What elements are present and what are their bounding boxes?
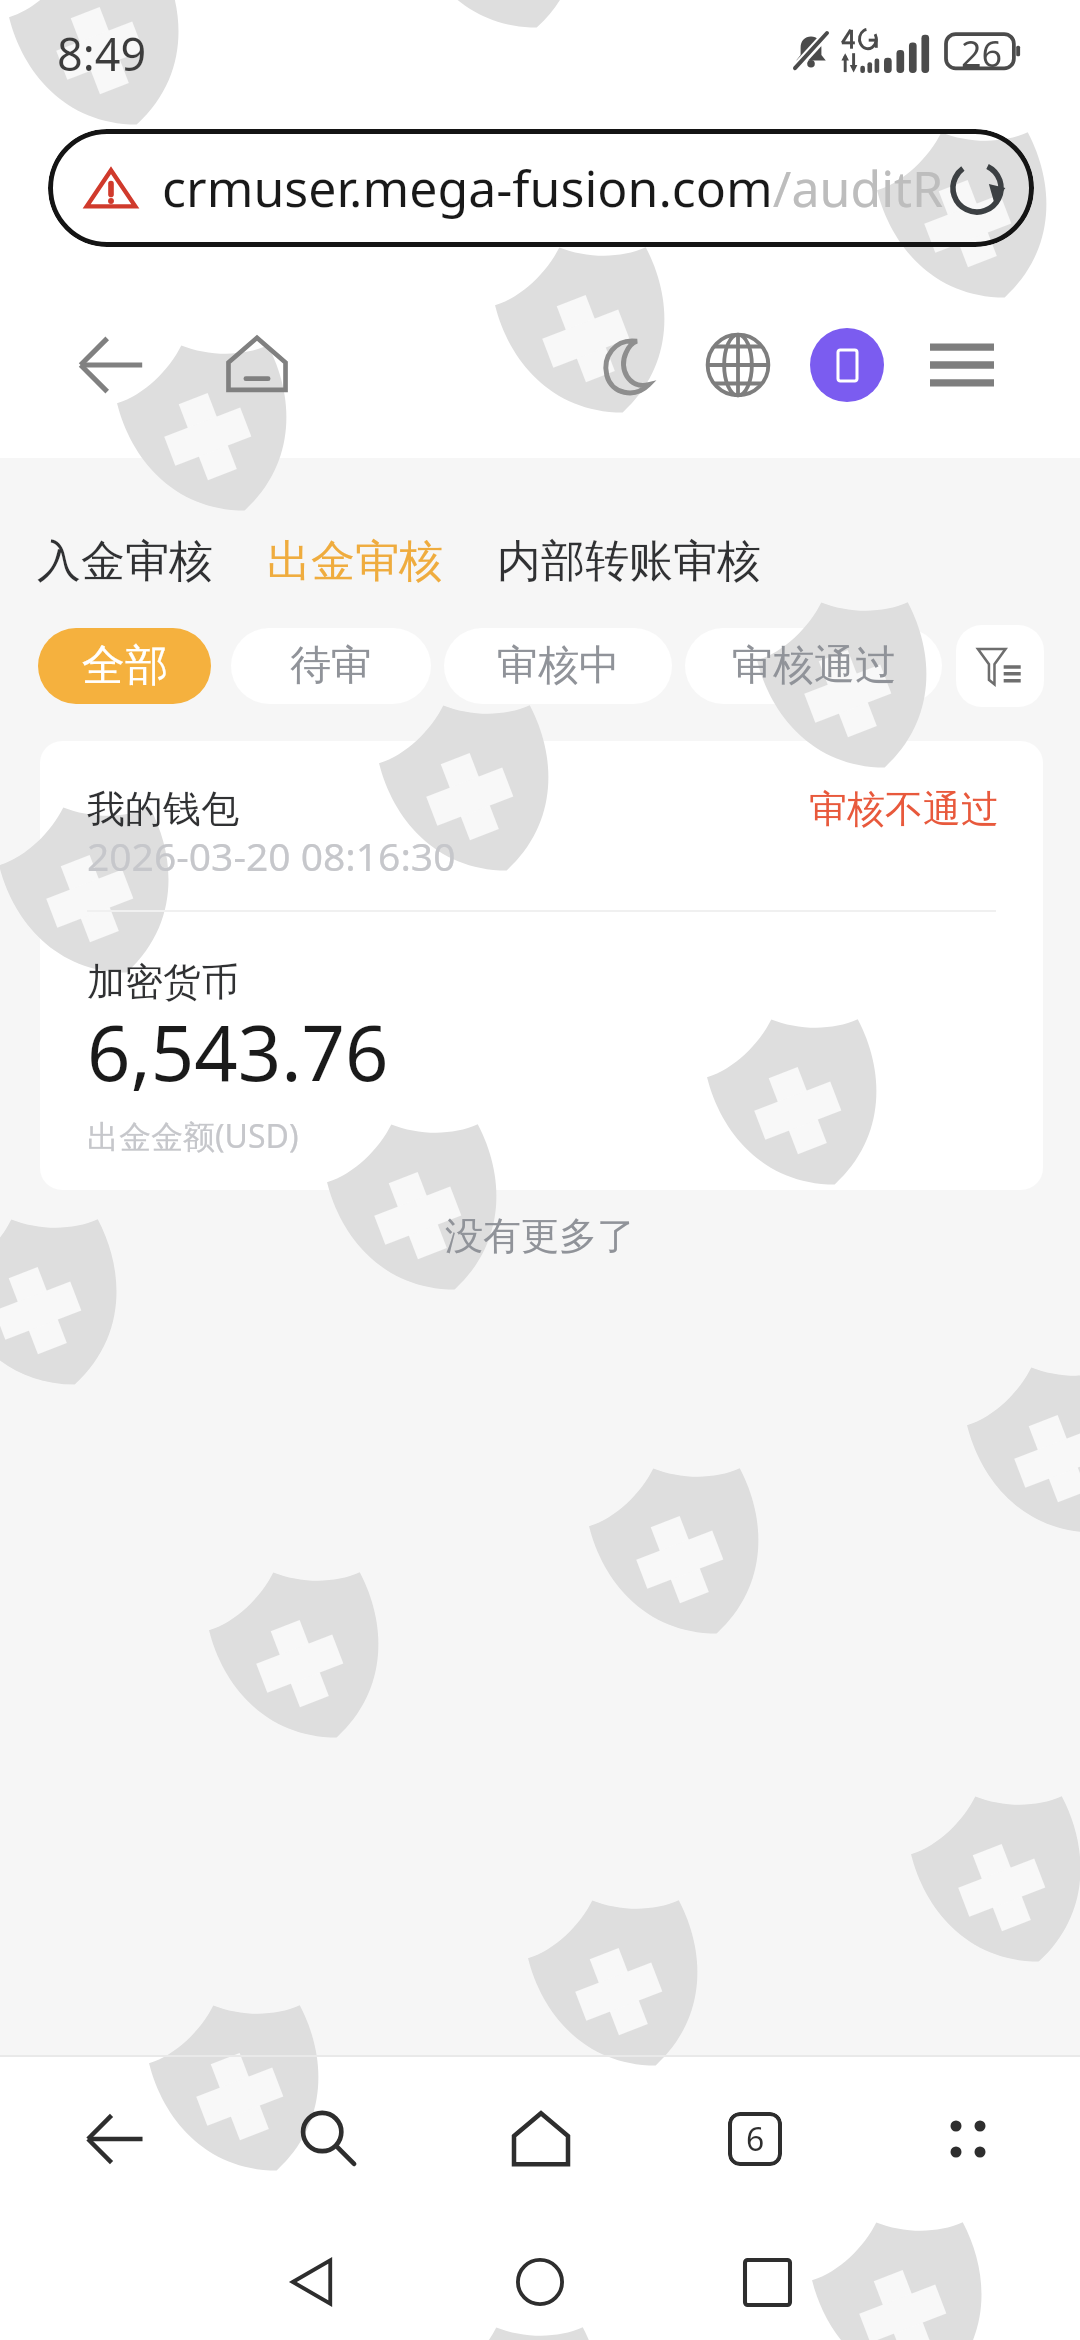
- button[interactable]: 出金审核: [240, 524, 470, 599]
- button[interactable]: 待审: [231, 628, 431, 704]
- staticText: 全部: [82, 639, 168, 693]
- staticText: 内部转账审核: [497, 534, 761, 589]
- staticText: 审核通过: [732, 640, 896, 692]
- staticText: 内部转账审核: [497, 534, 761, 589]
- button[interactable]: Back: [266, 2236, 358, 2328]
- staticText: 审核不通过: [809, 785, 999, 833]
- staticText: 6: [746, 2117, 765, 2161]
- staticText: 8:49: [57, 23, 147, 84]
- staticText: 审核中: [497, 640, 620, 692]
- button[interactable]: Filter: [956, 625, 1044, 707]
- button[interactable]: 入金审核: [10, 524, 240, 599]
- other: Reload: [944, 155, 1010, 221]
- staticText: 审核通过: [732, 640, 896, 692]
- button[interactable]: Search: [278, 2089, 378, 2189]
- button[interactable]: 审核通过: [685, 628, 942, 704]
- button[interactable]: Tabs: [705, 2089, 805, 2189]
- button[interactable]: 全部: [38, 628, 211, 704]
- staticText: crmuser.mega-fusion.com/auditRecords: [162, 154, 944, 222]
- button[interactable]: 审核中: [444, 628, 672, 704]
- button[interactable]: Home: [209, 317, 305, 413]
- button[interactable]: 内部转账审核: [470, 524, 788, 599]
- staticText: 加密货币: [87, 958, 239, 1006]
- button[interactable]: 我的钱包: [40, 741, 1043, 1190]
- button[interactable]: Recents: [721, 2236, 813, 2328]
- staticText: 全部: [82, 639, 168, 693]
- staticText: 2026-03-20 08:16:30: [87, 829, 456, 882]
- button[interactable]: 内部转账审核: [470, 524, 788, 599]
- staticText: 加密货币: [87, 958, 239, 1006]
- staticText: 6,543.76: [87, 1000, 389, 1104]
- button[interactable]: Translate: [690, 317, 786, 413]
- button[interactable]: Menu: [914, 317, 1010, 413]
- button[interactable]: Night mode: [582, 317, 678, 413]
- staticText: 出金金额(USD): [87, 1114, 299, 1158]
- staticText: 出金金额(USD): [87, 1114, 299, 1158]
- staticText: 6,543.76: [87, 1000, 389, 1104]
- button[interactable]: Home: [494, 2236, 586, 2328]
- staticText: 待审: [290, 640, 372, 692]
- button[interactable]: crmuser.mega-fusion.com/auditRecords: [48, 129, 1034, 247]
- button[interactable]: Back: [64, 2089, 164, 2189]
- button[interactable]: 我的钱包: [40, 741, 1043, 1190]
- staticText: 审核中: [497, 640, 620, 692]
- button[interactable]: Account: [799, 317, 895, 413]
- staticText: 我的钱包: [87, 785, 239, 833]
- button[interactable]: 审核通过: [685, 628, 942, 704]
- staticText: 审核不通过: [809, 785, 999, 833]
- staticText: 2026-03-20 08:16:30: [87, 829, 456, 882]
- button[interactable]: 待审: [231, 628, 431, 704]
- button[interactable]: Home: [491, 2089, 591, 2189]
- button[interactable]: More: [918, 2089, 1018, 2189]
- staticText: 入金审核: [37, 534, 213, 589]
- button[interactable]: [48, 129, 1034, 247]
- button[interactable]: 入金审核: [10, 524, 240, 599]
- staticText: 26: [961, 29, 1003, 73]
- staticText: 入金审核: [37, 534, 213, 589]
- button[interactable]: 审核中: [444, 628, 672, 704]
- button[interactable]: 全部: [38, 628, 211, 704]
- staticText: 出金审核: [267, 534, 443, 589]
- staticText: 待审: [290, 640, 372, 692]
- staticText: 我的钱包: [87, 785, 239, 833]
- staticText: 出金审核: [267, 534, 443, 589]
- staticText: 没有更多了: [0, 1212, 1080, 1260]
- button[interactable]: 出金审核: [240, 524, 470, 599]
- button[interactable]: Filter: [956, 625, 1044, 707]
- button[interactable]: Back: [62, 317, 158, 413]
